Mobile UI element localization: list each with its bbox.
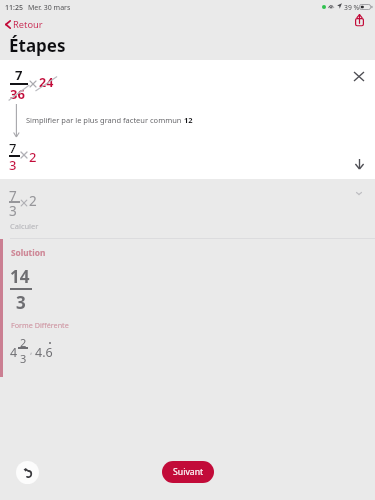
staticText: 7 [15, 66, 23, 84]
staticText: 2 [29, 148, 37, 166]
button[interactable]: Suivant [162, 461, 214, 483]
staticText: 2 [29, 192, 37, 210]
button[interactable]: Développer [349, 183, 369, 203]
staticText: Suivant [173, 466, 204, 478]
staticText: 4 [10, 344, 18, 361]
staticText: Étapes [9, 34, 66, 57]
staticText: Solution [11, 247, 46, 258]
staticText: 7 [9, 187, 17, 205]
staticText: Mer. 30 mars [28, 3, 71, 13]
staticText: 12 [184, 115, 193, 125]
staticText: 11:25 [5, 3, 23, 13]
button[interactable]: Étape suivante [349, 154, 369, 174]
button[interactable]: Annuler [16, 461, 39, 484]
staticText: 2 [20, 335, 27, 350]
staticText: 14 [10, 265, 30, 288]
staticText: 36 [10, 85, 25, 103]
button[interactable]: Fermer [349, 66, 369, 86]
button[interactable]: Retour [3, 16, 45, 33]
staticText: 4.6 [35, 344, 53, 361]
staticText: 24 [39, 74, 54, 91]
staticText: Retour [13, 18, 43, 31]
staticText: Simplifier par le plus grand facteur com… [26, 115, 184, 125]
staticText: Calculer [10, 221, 39, 231]
staticText: 3 [20, 351, 27, 366]
staticText: 7 [9, 139, 17, 157]
staticText: 39 % [344, 3, 360, 12]
staticText: 3 [16, 291, 26, 314]
staticText: , [30, 344, 33, 356]
staticText: 3 [9, 156, 17, 174]
button[interactable]: Partager [349, 10, 369, 30]
staticText: 3 [9, 202, 17, 220]
staticText: Forme Différente [11, 320, 69, 330]
